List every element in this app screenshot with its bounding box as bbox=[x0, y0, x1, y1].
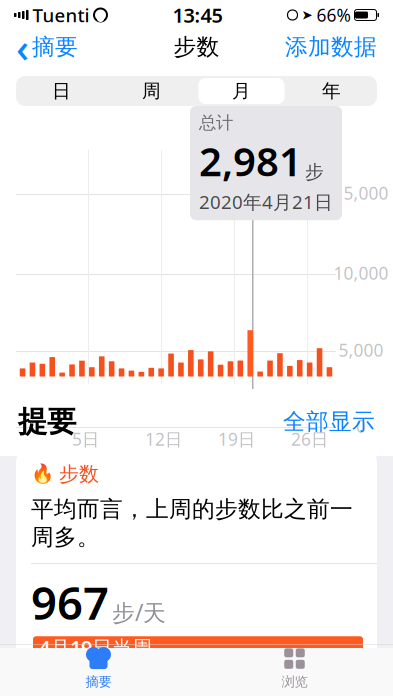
staticText: 添加数据 bbox=[285, 33, 377, 61]
staticText: 总计 bbox=[199, 112, 233, 133]
button[interactable]: 浏览 bbox=[196, 645, 392, 692]
staticText: 10,000 bbox=[333, 261, 388, 284]
staticText: 日 bbox=[52, 79, 71, 102]
staticText: 月 bbox=[232, 79, 251, 102]
staticText: 摘要 bbox=[85, 674, 111, 690]
button[interactable]: 日 bbox=[16, 76, 106, 106]
staticText: 🔥 bbox=[31, 463, 54, 485]
button[interactable]: 年 bbox=[286, 76, 376, 106]
staticText: 13:45 bbox=[172, 2, 222, 28]
staticText: Tuenti bbox=[32, 3, 89, 27]
button[interactable]: 🔥 bbox=[16, 450, 377, 666]
staticText: 15,000 bbox=[333, 181, 388, 204]
staticText: 5日 bbox=[72, 427, 99, 450]
staticText: 摘要 bbox=[32, 33, 78, 61]
staticText: ➤ bbox=[301, 7, 312, 22]
staticText: 步数 bbox=[59, 462, 99, 486]
button[interactable]: 全部显示 bbox=[283, 404, 375, 440]
staticText: 5,000 bbox=[338, 338, 383, 361]
button[interactable]: ‹ bbox=[6, 27, 88, 67]
staticText: 浏览 bbox=[281, 674, 307, 690]
staticText: 全部显示 bbox=[283, 408, 375, 436]
staticText: 2020年4月21日 bbox=[199, 189, 333, 214]
staticText: 步 bbox=[305, 160, 324, 183]
staticText: 2,981 bbox=[199, 134, 302, 187]
staticText: 步/天 bbox=[112, 597, 166, 627]
staticText: 967 bbox=[31, 572, 109, 632]
staticText: 步数 bbox=[173, 33, 219, 61]
staticText: 提要 bbox=[18, 404, 76, 440]
staticText: 26日 bbox=[291, 427, 328, 450]
staticText: ‹ bbox=[16, 20, 29, 73]
button[interactable]: 添加数据 bbox=[275, 27, 387, 67]
staticText: 0 bbox=[356, 414, 366, 437]
staticText: 平均而言，上周的步数比之前一周多。 bbox=[31, 495, 353, 551]
button[interactable]: 周 bbox=[106, 76, 196, 106]
button[interactable]: 月 bbox=[196, 76, 286, 106]
button[interactable]: 摘要 bbox=[0, 645, 196, 692]
staticText: 12日 bbox=[145, 427, 182, 450]
staticText: 年 bbox=[322, 79, 341, 102]
staticText: 66% bbox=[316, 3, 350, 26]
staticText: 周 bbox=[142, 79, 161, 102]
staticText: 19日 bbox=[218, 427, 255, 450]
staticText: 4月19日当周 bbox=[39, 634, 152, 661]
